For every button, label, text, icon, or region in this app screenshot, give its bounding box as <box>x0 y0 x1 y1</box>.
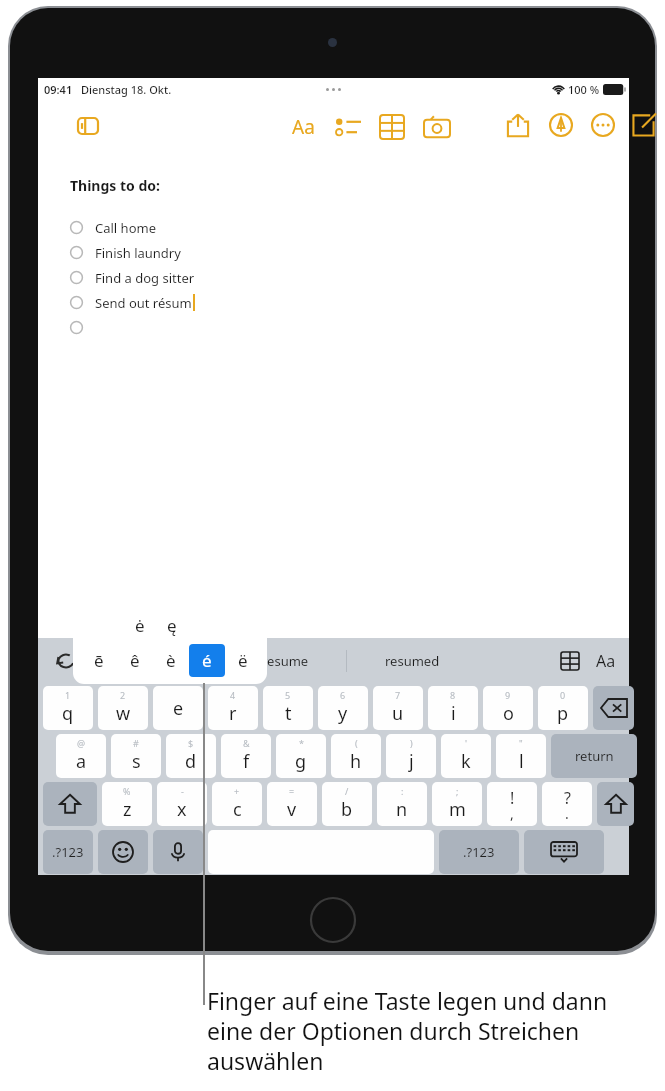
button[interactable]: 9 <box>483 686 533 730</box>
button[interactable]: 7 <box>373 686 423 730</box>
button[interactable]: return <box>551 734 637 778</box>
button[interactable]: New note <box>632 113 656 137</box>
staticText: 1 <box>65 689 71 701</box>
button[interactable]: Delete <box>593 686 634 730</box>
staticText: a <box>76 749 87 774</box>
button[interactable]: Shift <box>597 782 634 826</box>
button[interactable]: Send out résum <box>70 290 194 315</box>
button[interactable]: 0 <box>538 686 588 730</box>
button[interactable]: Dictate <box>153 830 203 874</box>
button[interactable]: / <box>322 782 372 826</box>
staticText: Find a dog sitter <box>95 269 195 287</box>
button[interactable]: Finish laundry <box>70 240 181 265</box>
staticText: ē <box>94 649 104 672</box>
button[interactable]: ! <box>487 782 537 826</box>
button[interactable]: Checklist <box>335 114 361 140</box>
staticText: ( <box>355 737 358 749</box>
button[interactable]: Table <box>380 115 404 139</box>
button[interactable]: 1 <box>43 686 93 730</box>
button[interactable]: 8 <box>428 686 478 730</box>
staticText: # <box>133 737 139 749</box>
staticText: Send out résum <box>95 294 192 312</box>
button[interactable]: Hide keyboard <box>524 830 604 874</box>
button[interactable]: ë <box>225 644 261 677</box>
button[interactable]: resume <box>224 638 346 684</box>
staticText: Dienstag 18. Okt. <box>81 82 172 97</box>
staticText: 7 <box>395 689 401 701</box>
staticText: ) <box>410 737 413 749</box>
button[interactable]: ; <box>432 782 482 826</box>
button[interactable]: * <box>276 734 326 778</box>
button[interactable]: + <box>212 782 262 826</box>
button[interactable]: é <box>189 644 225 677</box>
button[interactable]: - <box>157 782 207 826</box>
button[interactable]: ē <box>81 644 117 677</box>
staticText: .?123 <box>52 843 84 861</box>
button[interactable]: 5 <box>263 686 313 730</box>
staticText: ė <box>135 614 145 637</box>
button[interactable]: # <box>111 734 161 778</box>
staticText: é <box>202 649 212 672</box>
staticText: + <box>234 785 240 797</box>
button[interactable]: ? <box>542 782 592 826</box>
staticText: v <box>287 797 297 822</box>
button[interactable]: % <box>102 782 152 826</box>
button[interactable]: Table <box>555 646 585 676</box>
button[interactable]: = <box>267 782 317 826</box>
button[interactable]: & <box>221 734 271 778</box>
staticText: ! <box>510 787 515 809</box>
staticText: o <box>503 701 514 726</box>
button[interactable]: Markup <box>549 113 573 137</box>
staticText: w <box>116 701 131 726</box>
staticText: ; <box>456 785 459 797</box>
staticText: , <box>510 804 514 823</box>
staticText: Finish laundry <box>95 244 181 262</box>
button[interactable] <box>70 315 95 340</box>
button[interactable]: Aa <box>589 638 623 684</box>
button[interactable]: $ <box>166 734 216 778</box>
staticText: n <box>396 797 408 822</box>
button[interactable]: ) <box>386 734 436 778</box>
button[interactable]: " <box>496 734 546 778</box>
staticText: e <box>173 696 184 721</box>
staticText: p <box>557 701 569 726</box>
button[interactable]: .?123 <box>43 830 93 874</box>
button[interactable]: @ <box>56 734 106 778</box>
staticText: Things to do: <box>70 176 160 195</box>
button[interactable]: .?123 <box>439 830 519 874</box>
staticText: k <box>461 749 471 774</box>
staticText: h <box>350 749 362 774</box>
staticText: . <box>565 804 569 823</box>
button[interactable]: e <box>153 686 203 730</box>
button[interactable]: è <box>153 644 189 677</box>
staticText: t <box>285 701 292 726</box>
staticText: l <box>519 749 524 774</box>
button[interactable]: resumed <box>347 638 477 684</box>
staticText: 9 <box>505 689 511 701</box>
button[interactable]: Find a dog sitter <box>70 265 195 290</box>
button[interactable]: Undo <box>38 638 94 684</box>
staticText: 0 <box>560 689 566 701</box>
button[interactable]: Share <box>506 113 530 137</box>
button[interactable]: : <box>377 782 427 826</box>
staticText: 2 <box>120 689 126 701</box>
button[interactable]: ' <box>441 734 491 778</box>
button[interactable]: Call home <box>70 215 156 240</box>
button[interactable]: Shift <box>43 782 97 826</box>
button[interactable]: Sidebar <box>76 114 100 138</box>
button[interactable]: 4 <box>208 686 258 730</box>
staticText: ' <box>465 737 468 749</box>
staticText: m <box>449 797 466 822</box>
button[interactable]: ê <box>117 644 153 677</box>
staticText: b <box>341 797 353 822</box>
button[interactable]: Camera <box>424 115 450 141</box>
button[interactable]: ( <box>331 734 381 778</box>
button[interactable]: More <box>591 113 615 137</box>
button[interactable]: 2 <box>98 686 148 730</box>
button[interactable]: 6 <box>318 686 368 730</box>
button[interactable]: Format <box>288 112 318 142</box>
staticText: g <box>295 749 307 774</box>
button[interactable]: Emoji <box>98 830 148 874</box>
staticText: ę <box>167 614 177 637</box>
